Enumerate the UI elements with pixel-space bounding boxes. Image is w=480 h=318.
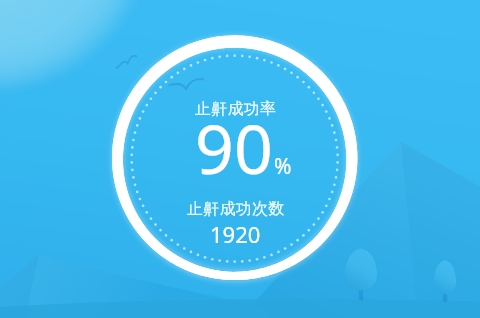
- staticText: 1920: [210, 219, 261, 249]
- staticText: 止鼾成功次数: [187, 199, 285, 219]
- staticText: 90: [195, 101, 273, 194]
- staticText: 止鼾成功率: [195, 99, 277, 119]
- staticText: %: [274, 152, 292, 181]
